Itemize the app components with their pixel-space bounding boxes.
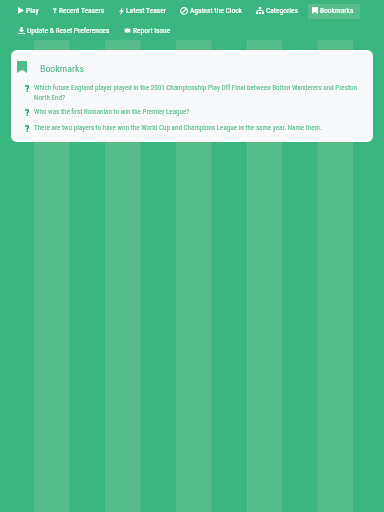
button[interactable]: Play (14, 4, 45, 19)
staticText: Who was the first Romanian to win the Pr… (34, 107, 190, 115)
button[interactable]: Bookmarks (17, 61, 84, 73)
staticText: ? (53, 6, 57, 15)
staticText: Categories (266, 6, 298, 15)
button[interactable]: ? (49, 4, 111, 19)
staticText: Latest Teaser (126, 6, 166, 15)
staticText: Bookmarks (320, 6, 354, 15)
staticText: ? (25, 123, 30, 134)
staticText: Against the Clock (190, 6, 242, 15)
staticText: ? (25, 107, 30, 118)
staticText: There are two players to have won the Wo… (34, 123, 322, 131)
button[interactable]: ? (17, 123, 365, 134)
button[interactable]: Latest Teaser (115, 4, 172, 19)
button[interactable]: ? (17, 83, 365, 102)
button[interactable]: ? (17, 107, 365, 118)
button[interactable]: Update & Reset Preferences (14, 24, 116, 39)
staticText: Recent Teasers (59, 6, 105, 15)
staticText: Update & Reset Preferences (27, 26, 110, 35)
staticText: Report Issue (133, 26, 171, 35)
button[interactable]: Categories (252, 4, 304, 19)
button[interactable]: Bookmarks (308, 4, 360, 19)
button[interactable]: Against the Clock (176, 4, 248, 19)
staticText: Which future England player played in th… (34, 83, 365, 102)
button[interactable]: Report Issue (120, 24, 177, 39)
staticText: Bookmarks (40, 63, 84, 75)
staticText: Play (26, 6, 39, 15)
staticText: ? (25, 83, 30, 94)
